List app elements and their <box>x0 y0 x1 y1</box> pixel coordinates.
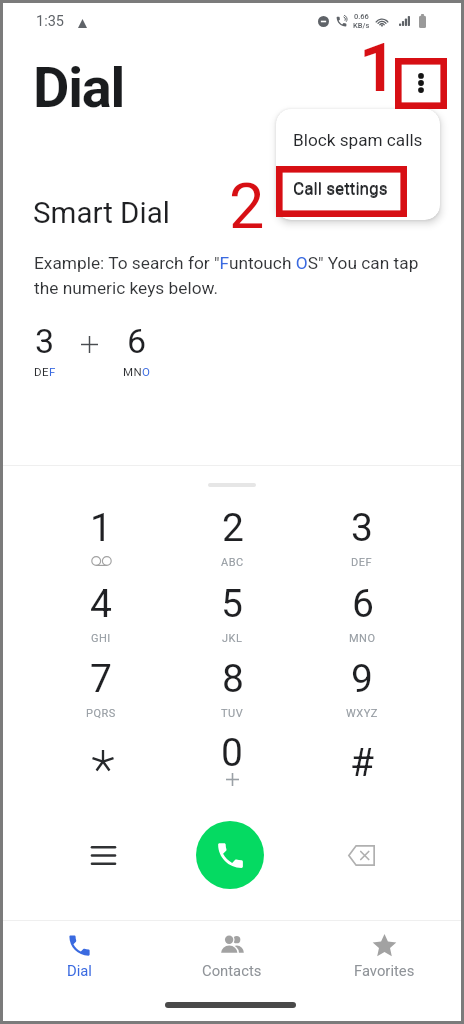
staticText: 7 <box>90 656 112 702</box>
staticText: DEF <box>34 365 56 378</box>
button[interactable]: Favorites <box>339 927 429 987</box>
staticText: Dial <box>67 962 92 979</box>
staticText: ABC <box>221 556 244 569</box>
staticText: JKL <box>222 632 243 645</box>
staticText: 1:35 <box>36 13 64 30</box>
button[interactable]: 7 <box>59 656 143 728</box>
staticText: 0 <box>221 730 243 776</box>
button[interactable]: Contacts <box>187 927 277 987</box>
button[interactable]: More options <box>398 61 444 108</box>
staticText: 1 <box>359 30 397 107</box>
button[interactable]: 0 <box>190 730 274 814</box>
staticText: 4 <box>90 581 112 627</box>
button[interactable] <box>59 737 143 821</box>
staticText: DEF <box>351 556 373 569</box>
button[interactable]: Call settings <box>276 165 440 220</box>
button[interactable]: 2 <box>190 505 274 577</box>
button[interactable]: Block spam calls <box>276 109 440 165</box>
button[interactable]: 9 <box>320 656 404 728</box>
staticText: 2 <box>222 505 244 551</box>
staticText: 3 <box>351 505 373 551</box>
button[interactable]: 4 <box>59 581 143 653</box>
staticText: Favorites <box>354 962 415 979</box>
button[interactable]: 1 <box>59 505 143 577</box>
button[interactable]: # <box>320 740 404 824</box>
button[interactable]: 5 <box>190 581 274 653</box>
staticText: 5 <box>221 581 243 627</box>
staticText: Call settings <box>293 179 388 199</box>
staticText: # <box>350 740 375 786</box>
staticText: 0.66 <box>354 12 369 21</box>
staticText: 1 <box>90 505 112 551</box>
staticText: 6 <box>127 321 147 361</box>
staticText: Block spam calls <box>293 130 423 150</box>
staticText: Dial <box>33 55 125 121</box>
staticText: Smart Dial <box>33 196 170 231</box>
staticText: 2 <box>229 170 265 244</box>
button[interactable]: Dial pad options <box>77 829 129 881</box>
staticText: KB/s <box>353 21 370 30</box>
button[interactable]: 8 <box>190 656 274 728</box>
staticText: Contacts <box>202 962 262 979</box>
staticText: MNO <box>349 632 376 645</box>
staticText: GHI <box>91 632 111 645</box>
staticText: 8 <box>222 656 244 702</box>
staticText: 3 <box>35 321 55 361</box>
button[interactable]: Call <box>196 821 264 889</box>
button[interactable]: 3 <box>320 505 404 577</box>
staticText: WXYZ <box>346 707 378 720</box>
button[interactable]: Delete <box>335 829 387 881</box>
button[interactable]: Dial <box>34 927 124 987</box>
staticText: 6 <box>352 581 374 627</box>
staticText: Example: To search for "Funtouch OS" You… <box>34 253 419 298</box>
staticText: PQRS <box>86 707 116 720</box>
staticText: TUV <box>221 707 244 720</box>
button[interactable]: 6 <box>320 581 404 653</box>
staticText: 9 <box>351 656 373 702</box>
staticText: Call settings <box>293 178 388 198</box>
staticText: MNO <box>123 365 151 378</box>
